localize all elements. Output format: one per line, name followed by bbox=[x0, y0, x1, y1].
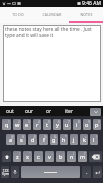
staticText: b bbox=[59, 153, 63, 161]
staticText: d bbox=[31, 136, 35, 144]
staticText: * bbox=[65, 135, 67, 139]
button[interactable]: our bbox=[19, 106, 39, 116]
staticText: 9:46 AM bbox=[82, 0, 101, 7]
staticText: k bbox=[83, 136, 86, 144]
staticText: CALENDAR bbox=[42, 12, 62, 17]
staticText: TO DO bbox=[12, 12, 24, 17]
staticText: - bbox=[75, 135, 77, 139]
button[interactable]: enter bbox=[93, 166, 102, 178]
button[interactable]: NOTES bbox=[69, 7, 103, 21]
button[interactable]: ; bbox=[56, 151, 65, 162]
staticText: 9 bbox=[88, 120, 90, 124]
button[interactable]: 8 bbox=[73, 119, 81, 130]
button[interactable]: * bbox=[60, 134, 68, 145]
staticText: l bbox=[93, 136, 95, 144]
staticText: NOTES bbox=[80, 12, 93, 17]
button[interactable]: sym bbox=[1, 166, 9, 178]
staticText: m bbox=[80, 153, 86, 161]
button[interactable]: these notes stay here all the time . Jus… bbox=[3, 25, 101, 102]
staticText: 3 bbox=[28, 120, 30, 124]
staticText: 5 bbox=[48, 120, 50, 124]
staticText: our bbox=[25, 108, 34, 115]
staticText: g bbox=[52, 136, 56, 144]
button[interactable]: mic bbox=[11, 166, 19, 178]
staticText: r bbox=[36, 121, 39, 129]
staticText: a bbox=[9, 136, 13, 144]
button[interactable]: ? bbox=[78, 151, 87, 162]
button[interactable]: & bbox=[50, 134, 58, 145]
button[interactable]: ! bbox=[13, 151, 21, 162]
staticText: 4 bbox=[38, 120, 40, 124]
staticText: n bbox=[70, 153, 74, 161]
staticText: c bbox=[37, 153, 40, 161]
button[interactable]: or bbox=[39, 106, 59, 116]
staticText: 6 bbox=[58, 120, 60, 124]
button[interactable]: 2 bbox=[13, 119, 21, 130]
staticText: v bbox=[48, 153, 51, 161]
staticText: 1 bbox=[8, 120, 10, 124]
staticText: # bbox=[22, 135, 25, 139]
button[interactable]: 3 bbox=[23, 119, 31, 130]
staticText: @ bbox=[11, 135, 14, 139]
staticText: u bbox=[65, 121, 69, 129]
staticText: ! bbox=[19, 152, 20, 156]
button[interactable]: + bbox=[80, 134, 88, 145]
staticText: ( bbox=[96, 135, 97, 139]
staticText: $ bbox=[34, 135, 36, 139]
button[interactable]: TO DO bbox=[0, 7, 35, 21]
staticText: iter bbox=[65, 108, 73, 115]
button[interactable]: ' bbox=[34, 151, 43, 162]
button[interactable]: shift bbox=[2, 151, 11, 162]
staticText: e bbox=[25, 121, 29, 129]
staticText: s bbox=[20, 136, 23, 144]
staticText: q bbox=[5, 121, 9, 129]
button[interactable]: : bbox=[45, 151, 54, 162]
staticText: & bbox=[54, 135, 57, 139]
staticText: ' bbox=[41, 152, 42, 156]
staticText: z bbox=[16, 153, 19, 161]
button[interactable]: 4 bbox=[33, 119, 41, 130]
staticText: x bbox=[26, 153, 29, 161]
button[interactable]: 6 bbox=[53, 119, 61, 130]
staticText: / bbox=[73, 152, 75, 156]
staticText: y bbox=[56, 121, 59, 129]
button[interactable]: 5 bbox=[43, 119, 51, 130]
staticText: 2 bbox=[18, 120, 20, 124]
button[interactable]: More suggestions bbox=[90, 108, 101, 116]
staticText: w bbox=[15, 121, 20, 129]
button[interactable]: $ bbox=[28, 134, 37, 145]
button[interactable]: / bbox=[67, 151, 76, 162]
button[interactable]: del bbox=[89, 151, 102, 162]
button[interactable]: " bbox=[23, 151, 32, 162]
staticText: 8 bbox=[78, 120, 80, 124]
staticText: t bbox=[46, 121, 49, 129]
staticText: j bbox=[73, 136, 75, 144]
staticText: f bbox=[43, 136, 45, 144]
staticText: ? bbox=[84, 152, 86, 156]
button[interactable]: 9 bbox=[83, 119, 91, 130]
button[interactable]: % bbox=[39, 134, 48, 145]
staticText: ; bbox=[63, 152, 64, 156]
button[interactable]: ( bbox=[90, 134, 98, 145]
staticText: " bbox=[29, 152, 31, 156]
staticText: these notes stay here all the time . Jus… bbox=[5, 26, 99, 38]
button[interactable]: space bbox=[21, 166, 80, 178]
staticText: % bbox=[44, 135, 47, 139]
button[interactable]: 7 bbox=[63, 119, 71, 130]
button[interactable]: iter bbox=[59, 106, 79, 116]
staticText: h bbox=[62, 136, 66, 144]
staticText: or bbox=[46, 108, 52, 115]
button[interactable]: dot bbox=[82, 166, 91, 178]
staticText: o bbox=[85, 121, 89, 129]
button[interactable]: # bbox=[17, 134, 26, 145]
button[interactable]: 0 bbox=[93, 119, 101, 130]
button[interactable]: 1 bbox=[2, 119, 11, 130]
button[interactable]: out bbox=[0, 106, 19, 116]
staticText: i bbox=[76, 121, 78, 129]
button[interactable]: - bbox=[70, 134, 78, 145]
staticText: 0 bbox=[98, 120, 100, 124]
staticText: + bbox=[85, 135, 87, 139]
button[interactable]: CALENDAR bbox=[35, 7, 69, 21]
staticText: . bbox=[86, 168, 88, 175]
button[interactable]: @ bbox=[6, 134, 15, 145]
